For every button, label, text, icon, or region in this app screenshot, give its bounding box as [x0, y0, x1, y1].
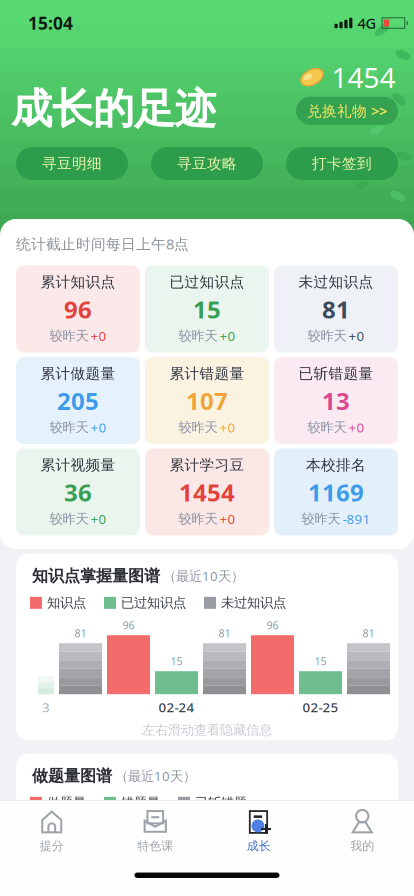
staticText: +0: [219, 327, 235, 345]
button[interactable]: 打卡签到: [286, 147, 398, 180]
staticText: 较昨天: [178, 511, 217, 527]
staticText: 提分: [40, 839, 64, 853]
staticText: 较昨天: [178, 328, 217, 344]
staticText: 1169: [308, 476, 364, 508]
staticText: 02-24: [158, 698, 194, 716]
staticText: 较昨天: [49, 511, 88, 527]
button[interactable]: 我的: [310, 801, 414, 853]
staticText: 15: [193, 293, 221, 325]
staticText: 累计做题量: [40, 365, 115, 383]
staticText: 96: [122, 618, 134, 632]
staticText: 96: [266, 618, 278, 632]
staticText: 统计截止时间每日上午8点: [16, 234, 189, 253]
staticText: 107: [186, 385, 228, 417]
staticText: 81: [74, 626, 86, 640]
staticText: 累计视频量: [40, 456, 115, 474]
staticText: 本校排名: [306, 456, 366, 474]
staticText: +0: [90, 419, 106, 436]
staticText: +0: [219, 510, 235, 528]
staticText: 81: [218, 626, 230, 640]
staticText: 36: [64, 476, 92, 508]
staticText: 左右滑动查看隐藏信息: [142, 722, 272, 738]
staticText: 已斩错题量: [298, 365, 373, 383]
staticText: 96: [64, 293, 92, 325]
staticText: 3: [42, 698, 50, 716]
staticText: （最近10天）: [163, 567, 244, 585]
staticText: 错题量: [121, 795, 160, 811]
staticText: 累计学习豆: [169, 456, 244, 474]
button[interactable]: 提分: [0, 801, 103, 853]
staticText: 较昨天: [178, 419, 217, 436]
staticText: 已过知识点: [121, 595, 186, 611]
staticText: 寻豆明细: [42, 154, 102, 172]
staticText: 我的: [350, 839, 374, 853]
staticText: 累计错题量: [169, 365, 244, 383]
staticText: 未过知识点: [221, 595, 286, 611]
staticText: 13: [322, 385, 350, 417]
button[interactable]: 寻豆攻略: [151, 147, 263, 180]
staticText: 较昨天: [49, 419, 88, 436]
staticText: （最近10天）: [115, 767, 196, 785]
staticText: -891: [342, 510, 370, 528]
staticText: 15:04: [28, 11, 73, 34]
staticText: 81: [362, 626, 374, 640]
staticText: 未过知识点: [298, 273, 373, 291]
button[interactable]: 寻豆明细: [16, 147, 128, 180]
staticText: 寻豆攻略: [177, 154, 237, 172]
staticText: 15: [314, 654, 326, 668]
staticText: 知识点掌握量图谱: [32, 566, 160, 586]
staticText: 累计知识点: [40, 273, 115, 291]
staticText: 1454: [331, 59, 395, 96]
staticText: 已过知识点: [169, 273, 244, 291]
staticText: 已斩错题: [195, 795, 247, 811]
staticText: +0: [348, 327, 364, 345]
button[interactable]: 成长: [207, 801, 310, 853]
staticText: 较昨天: [49, 328, 88, 344]
staticText: 81: [322, 293, 350, 325]
staticText: 较昨天: [307, 419, 346, 436]
staticText: 成长的足迹: [11, 84, 216, 134]
staticText: 较昨天: [307, 328, 346, 344]
staticText: 15: [170, 654, 182, 668]
button[interactable]: 兑换礼物 >>: [296, 97, 398, 125]
staticText: 205: [57, 385, 99, 417]
staticText: 知识点: [47, 595, 86, 611]
staticText: +0: [90, 510, 106, 528]
staticText: 较昨天: [301, 511, 340, 527]
staticText: 特色课: [137, 839, 173, 853]
staticText: 做题量图谱: [32, 766, 112, 786]
staticText: +0: [348, 419, 364, 436]
staticText: 兑换礼物 >>: [307, 101, 387, 121]
staticText: 02-25: [302, 698, 338, 716]
staticText: 成长: [247, 839, 271, 853]
staticText: +0: [90, 327, 106, 345]
staticText: 1454: [179, 476, 235, 508]
staticText: 做题量: [47, 795, 86, 811]
button[interactable]: 特色课: [103, 801, 207, 853]
staticText: 打卡签到: [312, 154, 372, 172]
staticText: +0: [219, 419, 235, 436]
staticText: 4G: [357, 13, 376, 33]
